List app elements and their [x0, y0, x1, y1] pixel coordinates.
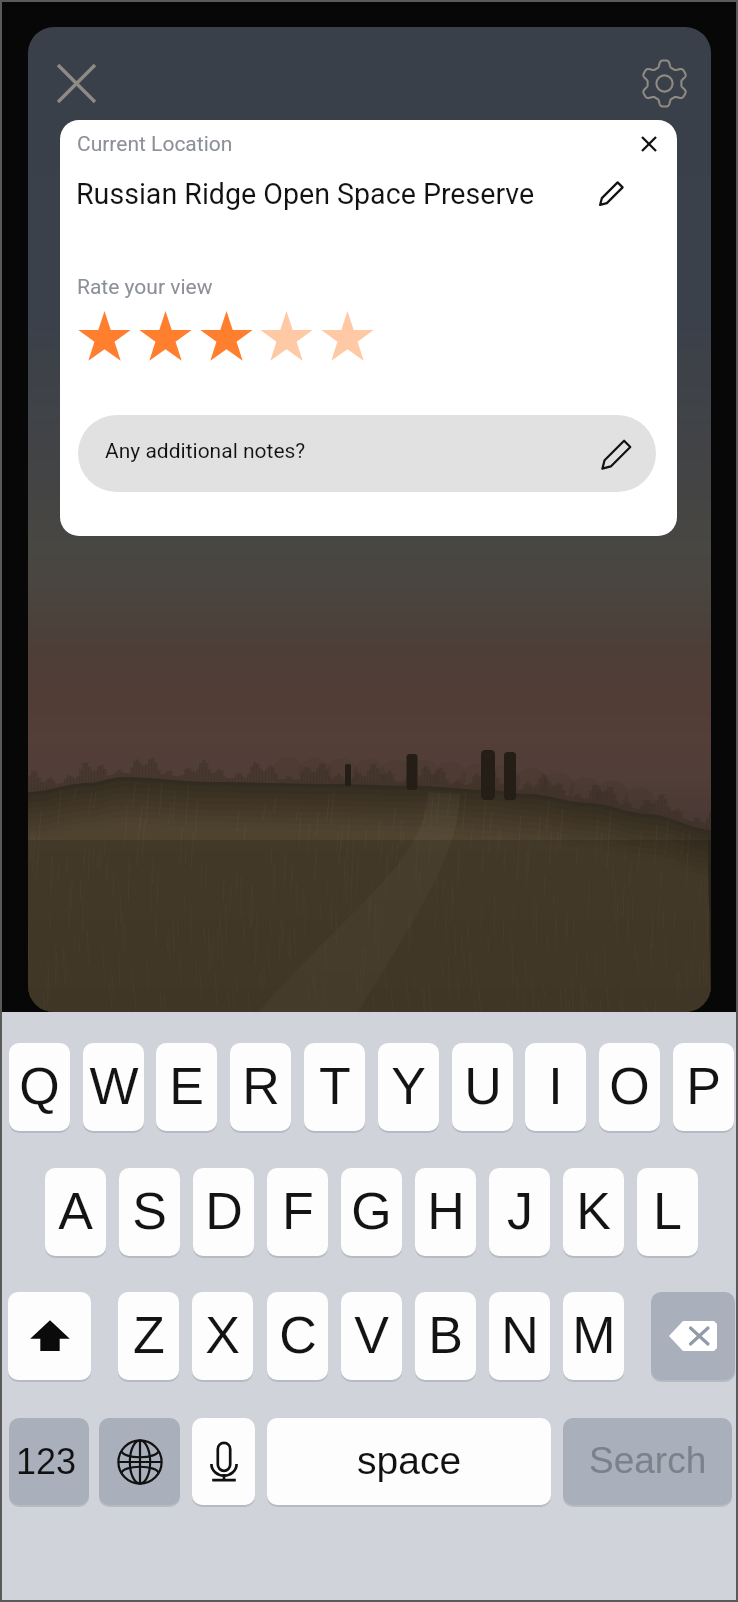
button[interactable]: Rate 3 stars [199, 310, 254, 365]
staticText: L [653, 1182, 682, 1240]
button[interactable]: Dismiss [621, 120, 677, 172]
staticText: Russian Ridge Open Space Preserve [76, 177, 535, 211]
staticText: H [427, 1182, 465, 1240]
staticText: 123 [16, 1441, 77, 1481]
button[interactable]: R [230, 1043, 291, 1131]
button[interactable]: Rate 2 stars [138, 310, 193, 365]
button[interactable]: Settings [626, 45, 703, 122]
button[interactable]: D [193, 1168, 254, 1256]
staticText: F [282, 1182, 314, 1240]
button[interactable]: Y [378, 1043, 439, 1131]
button[interactable]: Edit location [583, 165, 639, 221]
button[interactable]: Close [38, 45, 115, 122]
staticText: Any additional notes? [105, 439, 306, 464]
staticText: O [609, 1057, 650, 1115]
staticText: S [132, 1182, 167, 1240]
button[interactable]: F [267, 1168, 328, 1256]
button[interactable]: U [452, 1043, 513, 1131]
button[interactable]: Delete [651, 1292, 735, 1380]
button[interactable]: L [637, 1168, 698, 1256]
button[interactable]: J [489, 1168, 550, 1256]
button[interactable]: N [489, 1292, 550, 1380]
staticText: V [354, 1306, 389, 1364]
button[interactable]: S [119, 1168, 180, 1256]
staticText: D [205, 1182, 243, 1240]
staticText: U [464, 1057, 502, 1115]
button[interactable]: Rate 4 stars [259, 310, 314, 365]
staticText: W [89, 1057, 139, 1115]
staticText: space [357, 1439, 462, 1483]
button[interactable]: B [415, 1292, 476, 1380]
button[interactable]: space [267, 1418, 551, 1505]
button[interactable]: 123 [9, 1418, 89, 1505]
button[interactable]: M [563, 1292, 624, 1380]
button[interactable]: Search [563, 1418, 732, 1505]
staticText: Search [589, 1440, 707, 1481]
button[interactable]: O [599, 1043, 660, 1131]
button[interactable]: Rate 5 stars [320, 310, 375, 365]
button[interactable]: X [192, 1292, 253, 1380]
button[interactable]: W [83, 1043, 144, 1131]
staticText: C [279, 1306, 317, 1364]
staticText: N [501, 1306, 539, 1364]
button[interactable]: G [341, 1168, 402, 1256]
staticText: Current Location [77, 132, 233, 157]
button[interactable]: Rate 1 stars [77, 310, 132, 365]
button[interactable]: Shift [8, 1292, 91, 1380]
button[interactable]: C [267, 1292, 328, 1380]
staticText: Rate your view [77, 275, 213, 300]
staticText: Q [19, 1057, 60, 1115]
button[interactable]: K [563, 1168, 624, 1256]
staticText: Z [133, 1306, 165, 1364]
staticText: A [58, 1182, 93, 1240]
button[interactable]: H [415, 1168, 476, 1256]
button[interactable]: A [45, 1168, 106, 1256]
button[interactable]: Q [9, 1043, 70, 1131]
staticText: E [169, 1057, 204, 1115]
staticText: Y [391, 1057, 426, 1115]
staticText: M [572, 1306, 616, 1364]
button[interactable]: Any additional notes? [78, 415, 656, 492]
button[interactable]: P [673, 1043, 734, 1131]
staticText: R [242, 1057, 280, 1115]
button[interactable]: Voice input [192, 1418, 255, 1505]
button[interactable]: Change keyboard [99, 1418, 180, 1505]
staticText: B [428, 1306, 463, 1364]
staticText: T [319, 1057, 351, 1115]
staticText: X [205, 1306, 240, 1364]
staticText: I [548, 1057, 563, 1115]
button[interactable]: T [304, 1043, 365, 1131]
staticText: P [686, 1057, 721, 1115]
button[interactable]: V [341, 1292, 402, 1380]
button[interactable]: I [525, 1043, 586, 1131]
button[interactable]: Z [118, 1292, 179, 1380]
staticText: G [351, 1182, 392, 1240]
button[interactable]: E [156, 1043, 217, 1131]
staticText: K [576, 1182, 611, 1240]
staticText: J [507, 1182, 533, 1240]
